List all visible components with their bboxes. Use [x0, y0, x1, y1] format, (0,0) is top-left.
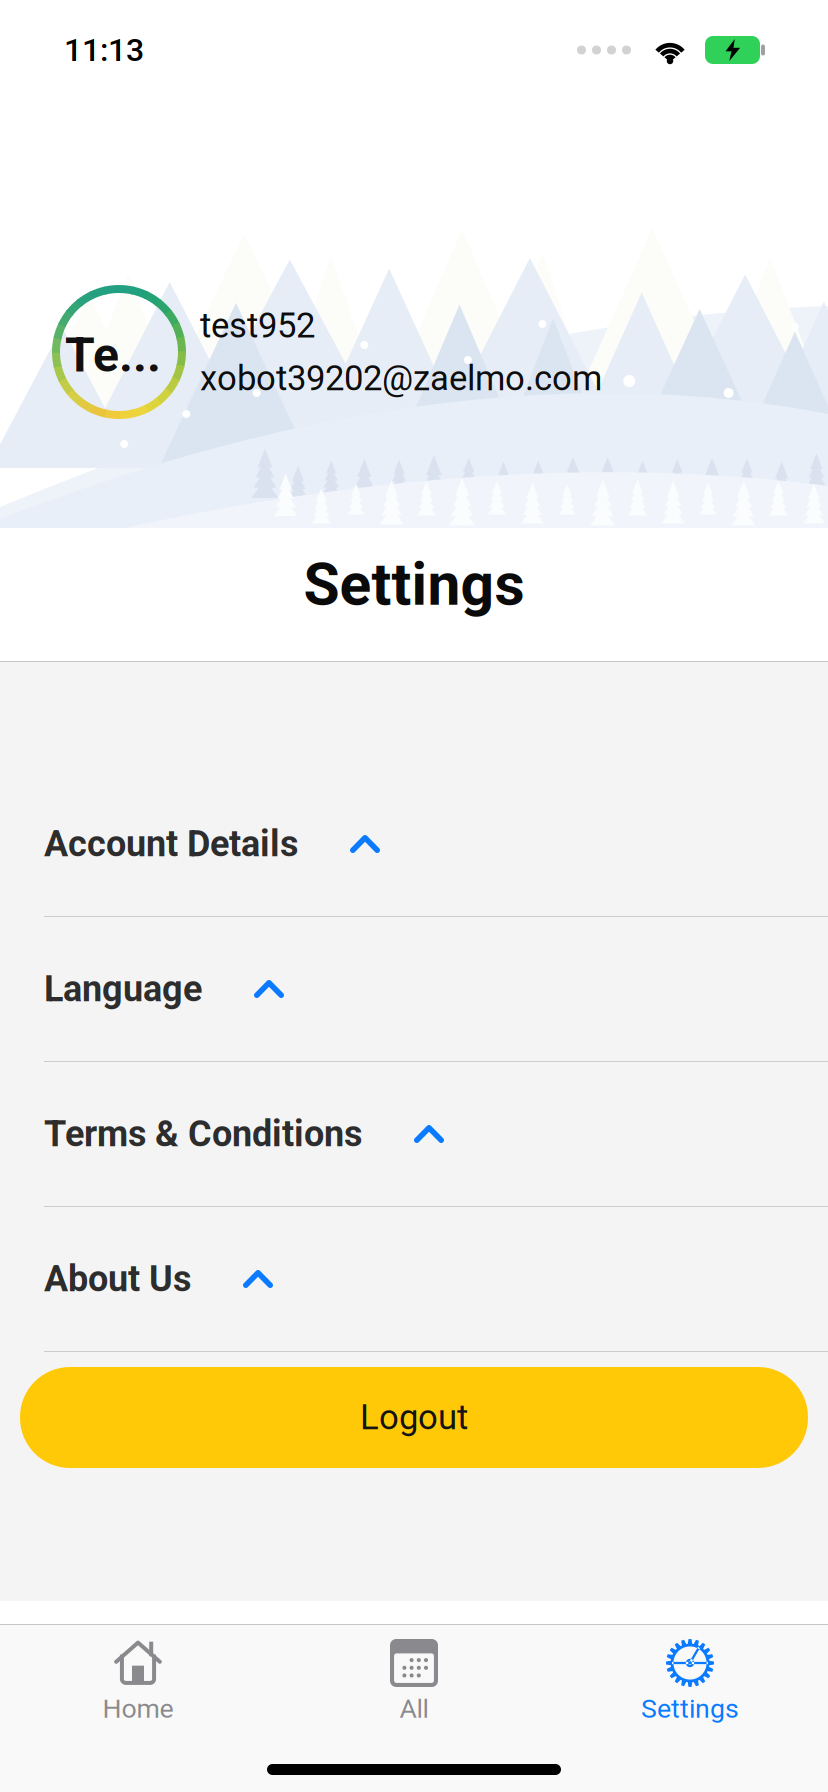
staticText: Logout: [360, 1397, 468, 1438]
staticText: Language: [44, 968, 202, 1010]
staticText: Terms & Conditions: [44, 1113, 362, 1155]
button[interactable]: Language: [0, 917, 828, 1062]
staticText: About Us: [44, 1258, 191, 1300]
staticText: xobot39202@zaelmo.com: [200, 358, 602, 399]
staticText: test952: [200, 305, 315, 346]
staticText: Home: [102, 1693, 173, 1724]
button[interactable]: Home: [0, 1625, 276, 1724]
button[interactable]: Logout: [0, 1367, 828, 1468]
staticText: Settings: [303, 550, 524, 619]
staticText: Account Details: [44, 823, 298, 865]
button[interactable]: Account Details: [0, 772, 828, 917]
staticText: All: [399, 1693, 428, 1724]
button[interactable]: All: [276, 1625, 552, 1724]
staticText: Settings: [641, 1693, 739, 1724]
staticText: 11:13: [64, 31, 144, 69]
button[interactable]: Terms & Conditions: [0, 1062, 828, 1207]
button[interactable]: Settings: [552, 1625, 828, 1724]
button[interactable]: About Us: [0, 1207, 828, 1352]
staticText: Te...: [65, 327, 161, 383]
